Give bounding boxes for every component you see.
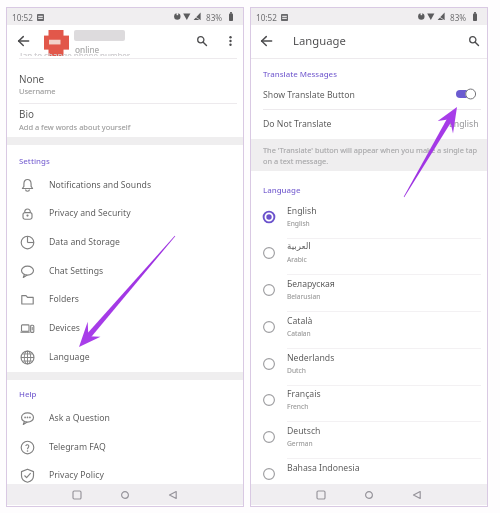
button[interactable]: English bbox=[251, 202, 487, 239]
button[interactable]: Back bbox=[9, 27, 37, 55]
staticText: Username bbox=[19, 86, 56, 96]
staticText: Devices bbox=[49, 322, 80, 334]
staticText: Català bbox=[287, 315, 313, 327]
button[interactable]: Беларуская bbox=[251, 275, 487, 312]
staticText: Privacy Policy bbox=[49, 469, 104, 481]
staticText: The 'Translate' button will appear when … bbox=[263, 145, 478, 166]
staticText: Catalan bbox=[287, 329, 311, 338]
button[interactable]: العربية bbox=[251, 238, 487, 275]
staticText: Tap to change phone number bbox=[19, 53, 131, 56]
staticText: Translate Messages bbox=[263, 69, 337, 80]
button[interactable]: Nederlands bbox=[251, 349, 487, 386]
staticText: Ask a Question bbox=[49, 412, 110, 424]
staticText: English bbox=[449, 118, 479, 130]
staticText: Add a few words about yourself bbox=[19, 122, 131, 132]
staticText: English bbox=[287, 205, 317, 217]
staticText: Nederlands bbox=[287, 352, 335, 364]
button[interactable]: Telegram FAQ bbox=[7, 432, 243, 461]
button[interactable]: Bahasa Indonesia bbox=[251, 459, 487, 496]
button[interactable]: Folders bbox=[7, 284, 243, 313]
staticText: Belarusian bbox=[287, 292, 321, 301]
staticText: Français bbox=[287, 388, 321, 400]
staticText: French bbox=[287, 402, 309, 411]
staticText: 10:52 bbox=[12, 12, 33, 23]
button[interactable]: Search bbox=[460, 27, 488, 55]
staticText: 10:52 bbox=[256, 12, 277, 23]
button[interactable]: Back bbox=[252, 27, 280, 55]
button[interactable]: Deutsch bbox=[251, 422, 487, 459]
staticText: Show Translate Button bbox=[263, 89, 355, 101]
button[interactable]: Français bbox=[251, 385, 487, 422]
button[interactable]: Privacy Policy bbox=[7, 460, 243, 489]
staticText: English bbox=[287, 219, 310, 228]
button[interactable]: Back bbox=[404, 484, 430, 505]
staticText: Help bbox=[19, 389, 37, 400]
button[interactable]: Recents bbox=[64, 484, 90, 505]
button[interactable]: Back bbox=[160, 484, 186, 505]
staticText: online bbox=[75, 44, 100, 55]
staticText: None bbox=[19, 72, 45, 85]
staticText: Language bbox=[263, 185, 301, 196]
staticText: Telegram FAQ bbox=[49, 441, 106, 453]
button[interactable] bbox=[251, 85, 487, 109]
staticText: Arabic bbox=[287, 255, 307, 264]
button[interactable]: Search bbox=[188, 27, 216, 55]
staticText: العربية bbox=[287, 241, 311, 251]
button[interactable]: Home bbox=[356, 484, 382, 505]
staticText: Data and Storage bbox=[49, 236, 121, 248]
staticText: 83% bbox=[206, 12, 223, 23]
button[interactable]: Home bbox=[112, 484, 138, 505]
button[interactable]: Notifications and Sounds bbox=[7, 170, 243, 199]
staticText: Dutch bbox=[287, 366, 306, 375]
button[interactable]: More options bbox=[216, 27, 244, 55]
button[interactable]: Privacy and Security bbox=[7, 198, 243, 227]
button[interactable]: Català bbox=[251, 312, 487, 349]
staticText: Беларуская bbox=[287, 278, 335, 290]
staticText: Do Not Translate bbox=[263, 118, 332, 130]
staticText: 83% bbox=[450, 12, 467, 23]
staticText: Folders bbox=[49, 293, 79, 305]
button[interactable]: Language bbox=[7, 342, 243, 371]
button[interactable]: Devices bbox=[7, 313, 243, 342]
staticText: Language bbox=[49, 351, 90, 363]
staticText: Language bbox=[293, 33, 346, 48]
button[interactable]: Recents bbox=[308, 484, 334, 505]
staticText: Chat Settings bbox=[49, 265, 104, 277]
button[interactable] bbox=[7, 59, 243, 103]
button[interactable]: Data and Storage bbox=[7, 227, 243, 256]
staticText: Privacy and Security bbox=[49, 207, 131, 219]
button[interactable]: Chat Settings bbox=[7, 256, 243, 285]
button[interactable] bbox=[7, 104, 243, 142]
staticText: Bahasa Indonesia bbox=[287, 462, 360, 474]
staticText: German bbox=[287, 439, 313, 448]
staticText: Notifications and Sounds bbox=[49, 179, 152, 191]
staticText: Bio bbox=[19, 107, 34, 120]
button[interactable]: Ask a Question bbox=[7, 403, 243, 432]
button[interactable] bbox=[251, 109, 487, 135]
staticText: Deutsch bbox=[287, 425, 321, 437]
staticText: Settings bbox=[19, 156, 50, 167]
